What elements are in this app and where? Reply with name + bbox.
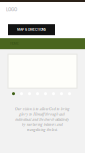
staticText: Our vision is to allow God to bring glor… xyxy=(14,106,69,132)
staticText: HOME xyxy=(10,42,19,46)
staticText: MAP & DIRECTIONS xyxy=(17,28,46,32)
staticText: LOGO xyxy=(6,7,17,12)
button[interactable]: Home xyxy=(0,2,17,14)
button[interactable]: MAP & DIRECTIONS xyxy=(8,24,55,35)
button[interactable]: Slide 1 xyxy=(12,92,15,95)
